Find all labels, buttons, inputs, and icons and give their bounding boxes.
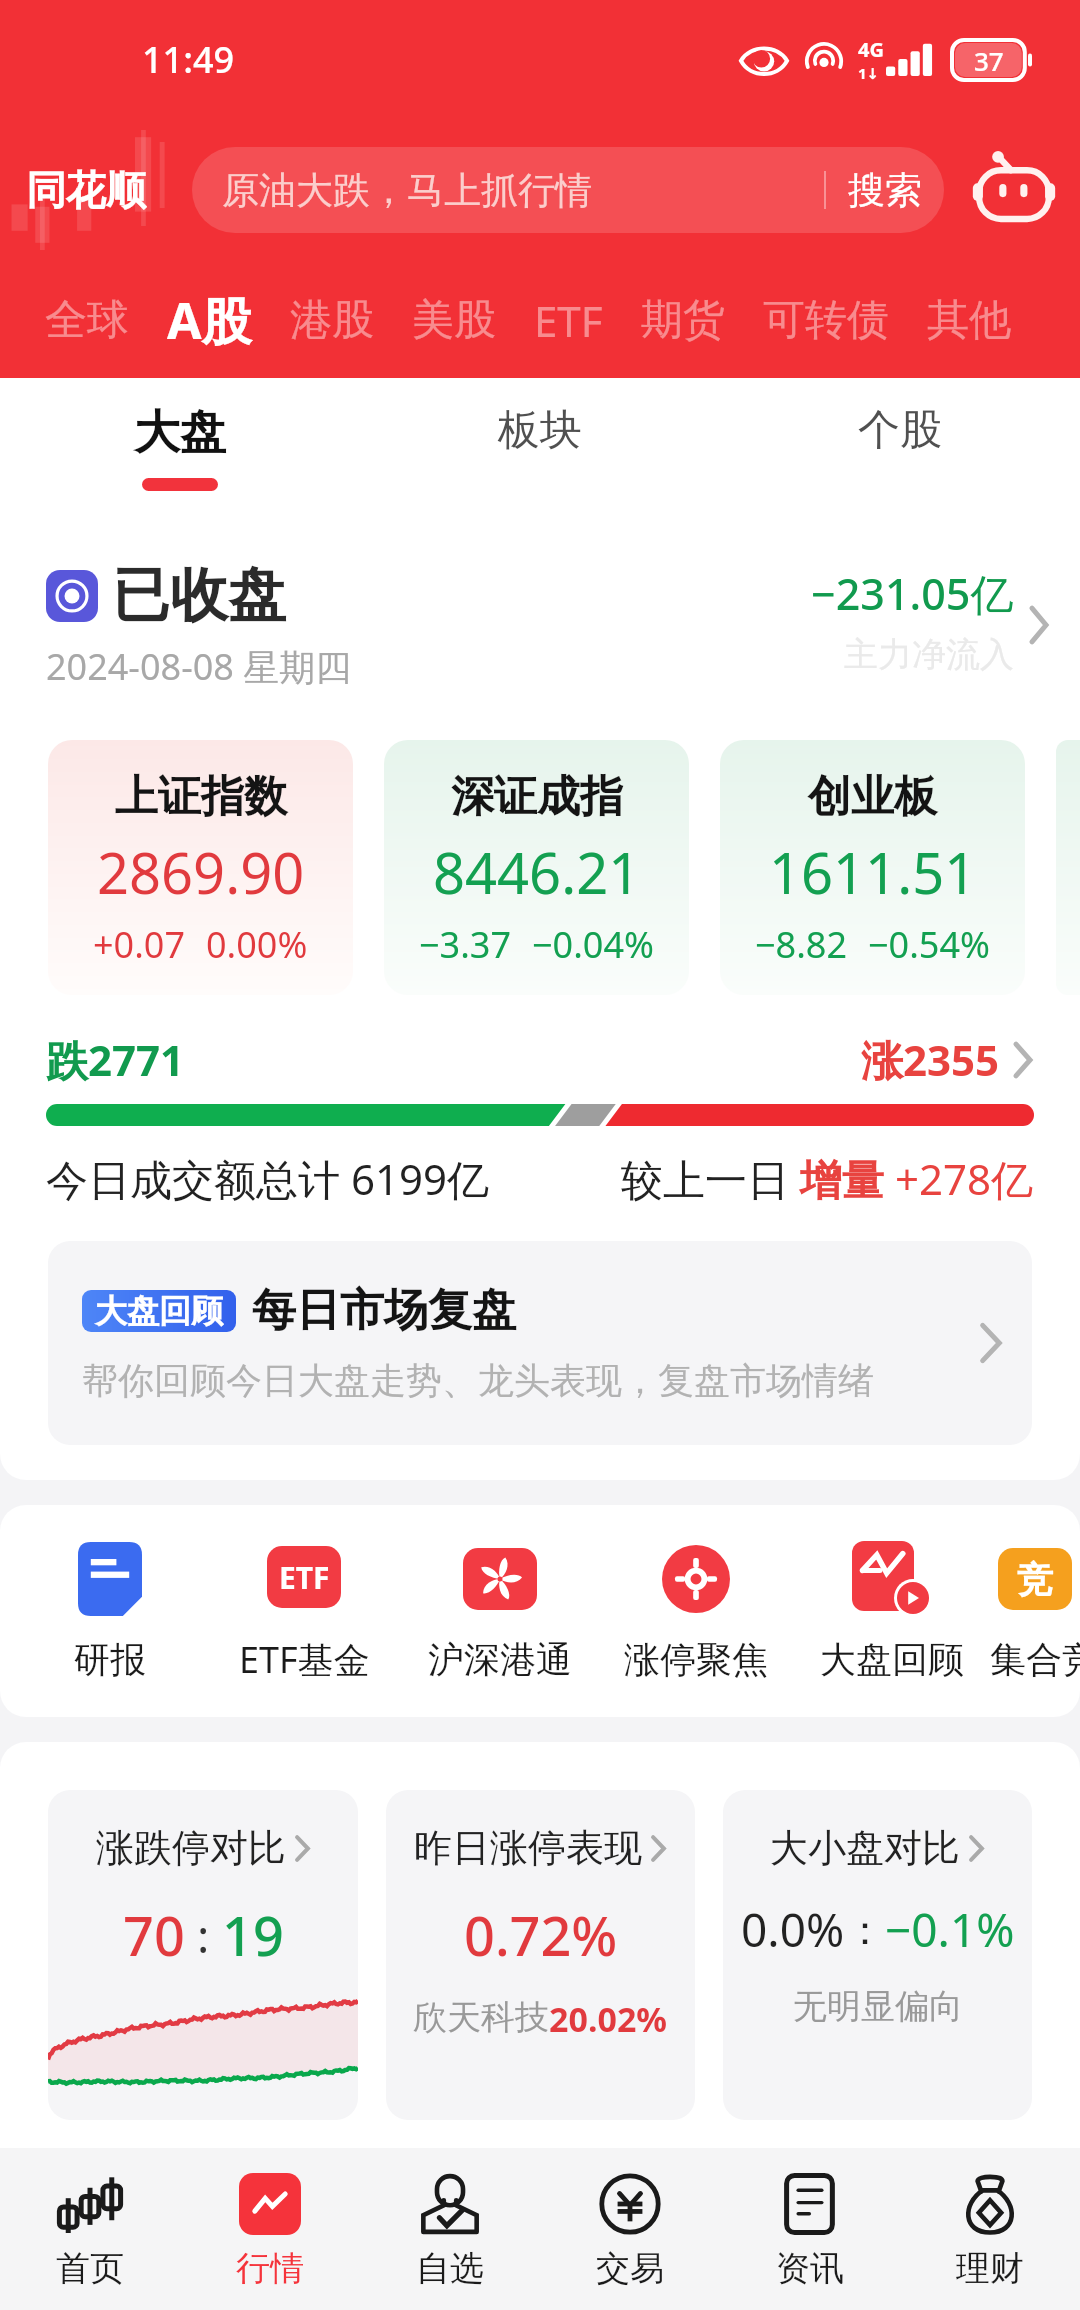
- button[interactable]: 已收盘: [0, 510, 1080, 740]
- staticText: 大盘回顾: [820, 1637, 964, 1682]
- button[interactable]: 期货: [622, 262, 744, 378]
- staticText: 较上一日: [621, 1150, 800, 1207]
- button[interactable]: 板块: [360, 378, 720, 510]
- staticText: 2024-08-08 星期四: [46, 642, 352, 691]
- button[interactable]: 上证指数: [48, 740, 353, 995]
- staticText: 主力净流入: [844, 633, 1014, 676]
- button[interactable]: 其他: [908, 262, 1030, 378]
- staticText: 同花顺: [26, 165, 146, 215]
- staticText: ETF: [534, 292, 603, 349]
- staticText: 11:49: [142, 35, 235, 84]
- staticText: 涨跌停对比: [96, 1824, 286, 1872]
- button[interactable]: 涨跌停对比: [48, 1790, 358, 2120]
- button[interactable]: A股: [148, 262, 271, 378]
- button[interactable]: 港股: [271, 262, 393, 378]
- button[interactable]: 可转债: [744, 262, 908, 378]
- staticText: 已收盘: [112, 559, 286, 632]
- staticText: 理财: [956, 2247, 1024, 2290]
- staticText: 无明显偏向: [793, 1985, 963, 2028]
- staticText: 研报: [74, 1637, 146, 1682]
- button[interactable]: 美股: [393, 262, 515, 378]
- staticText: 美股: [412, 294, 496, 347]
- staticText: 大盘: [134, 404, 226, 462]
- button[interactable]: 自选: [360, 2148, 540, 2310]
- staticText: 行情: [236, 2247, 304, 2290]
- staticText: −0.1%: [885, 1898, 1015, 1961]
- staticText: +278亿: [895, 1150, 1034, 1207]
- staticText: 竞: [1017, 1557, 1053, 1602]
- staticText: −231.05亿: [811, 564, 1014, 623]
- staticText: 37: [974, 43, 1004, 78]
- staticText: 涨2355: [861, 1031, 1000, 1088]
- staticText: 搜索: [848, 167, 922, 214]
- staticText: 帮你回顾今日大盘走势、龙头表现，复盘市场情绪: [82, 1358, 874, 1403]
- staticText: 交易: [596, 2247, 664, 2290]
- staticText: A股: [167, 286, 252, 354]
- button[interactable]: 涨停聚焦: [598, 1541, 794, 1682]
- staticText: 0.00%: [206, 920, 308, 969]
- staticText: 集合竞价: [990, 1637, 1080, 1682]
- staticText: 期货: [641, 294, 725, 347]
- staticText: 4G: [858, 36, 884, 63]
- staticText: 资讯: [776, 2247, 844, 2290]
- staticText: −8.82: [755, 920, 848, 969]
- button[interactable]: 深证成指: [384, 740, 689, 995]
- button[interactable]: 竞: [990, 1541, 1080, 1682]
- staticText: 19: [222, 1898, 284, 1972]
- staticText: 今日成交额总计 6199亿: [46, 1150, 490, 1207]
- button[interactable]: 首页: [0, 2148, 180, 2310]
- staticText: 欣天科技: [413, 1996, 549, 2039]
- staticText: ETF基金: [239, 1635, 370, 1684]
- button[interactable]: 大盘回顾: [794, 1541, 990, 1682]
- staticText: 首页: [56, 2247, 124, 2290]
- staticText: −3.37: [419, 920, 512, 969]
- staticText: 港股: [290, 294, 374, 347]
- staticText: 昨日涨停表现: [414, 1824, 642, 1872]
- staticText: 创业板: [808, 770, 937, 824]
- button[interactable]: 沪深港通: [402, 1541, 598, 1682]
- staticText: 1↓: [858, 63, 880, 83]
- staticText: 可转债: [763, 294, 889, 347]
- button[interactable]: 全球: [26, 262, 148, 378]
- staticText: 0.0%: [741, 1898, 845, 1961]
- staticText: 大小盘对比: [770, 1824, 960, 1872]
- button[interactable]: 行情: [180, 2148, 360, 2310]
- staticText: ：: [845, 1905, 885, 1955]
- staticText: 上证指数: [115, 770, 287, 824]
- staticText: −0.54%: [868, 920, 990, 969]
- staticText: 深证成指: [451, 770, 623, 824]
- button[interactable]: 昨日涨停表现: [386, 1790, 695, 2120]
- staticText: 20.02%: [549, 1996, 668, 2042]
- staticText: 个股: [858, 404, 942, 457]
- button[interactable]: 创业板: [720, 740, 1025, 995]
- staticText: 每日市场复盘: [252, 1283, 516, 1338]
- button[interactable]: 跌2771: [46, 1031, 1034, 1088]
- button[interactable]: AI 助手: [962, 138, 1066, 242]
- button[interactable]: 大盘回顾: [48, 1241, 1032, 1445]
- staticText: 大盘回顾: [95, 1291, 223, 1331]
- staticText: 0.72%: [464, 1898, 618, 1972]
- button[interactable]: 大盘: [0, 378, 360, 510]
- staticText: 自选: [416, 2247, 484, 2290]
- staticText: 沪深港通: [428, 1637, 572, 1682]
- button[interactable]: 大小盘对比: [723, 1790, 1032, 2120]
- button[interactable]: 理财: [900, 2148, 1080, 2310]
- staticText: :: [185, 1904, 222, 1967]
- button[interactable]: 研报: [14, 1541, 206, 1682]
- staticText: 原油大跌，马上抓行情: [222, 167, 824, 214]
- staticText: +0.07: [93, 920, 186, 969]
- button[interactable]: 交易: [540, 2148, 720, 2310]
- staticText: ETF: [279, 1557, 330, 1598]
- staticText: 跌2771: [46, 1031, 185, 1088]
- staticText: 2869.90: [97, 834, 305, 910]
- button[interactable]: ETF: [515, 262, 622, 378]
- staticText: 增量: [800, 1150, 895, 1207]
- staticText: 板块: [498, 404, 582, 457]
- staticText: 8446.21: [433, 834, 641, 910]
- staticText: −0.04%: [532, 920, 654, 969]
- button[interactable]: 原油大跌，马上抓行情: [192, 147, 944, 233]
- button[interactable]: 资讯: [720, 2148, 900, 2310]
- button[interactable]: ETF: [206, 1539, 402, 1684]
- staticText: 70: [123, 1898, 185, 1972]
- button[interactable]: 个股: [720, 378, 1080, 510]
